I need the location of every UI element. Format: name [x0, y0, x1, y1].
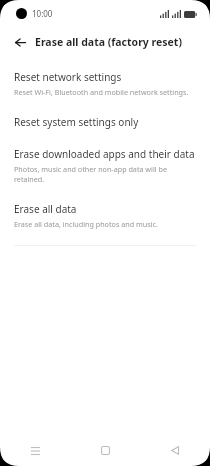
button[interactable]: Erase all data	[0, 193, 210, 238]
staticText: Erase all data (factory reset)	[35, 35, 182, 49]
staticText: Reset system settings only	[14, 115, 139, 129]
staticText: Erase all data, including photos and mus…	[14, 219, 158, 229]
staticText: Photos, music and other non-app data wil…	[14, 164, 198, 184]
staticText: Reset network settings	[14, 70, 122, 84]
button[interactable]: Reset network settings	[0, 61, 210, 106]
staticText: Erase downloaded apps and their data	[14, 147, 195, 161]
staticText: Reset Wi-Fi, Bluetooth and mobile networ…	[14, 87, 189, 97]
button[interactable]: Home	[70, 435, 140, 466]
button[interactable]: Back	[9, 31, 31, 53]
button[interactable]: Erase downloaded apps and their data	[0, 138, 210, 193]
staticText: Erase all data	[14, 202, 77, 216]
button[interactable]: Recent apps	[0, 435, 70, 466]
button[interactable]: Back	[140, 435, 210, 466]
staticText: 10:00	[32, 8, 53, 19]
button[interactable]: Reset system settings only	[0, 106, 210, 138]
